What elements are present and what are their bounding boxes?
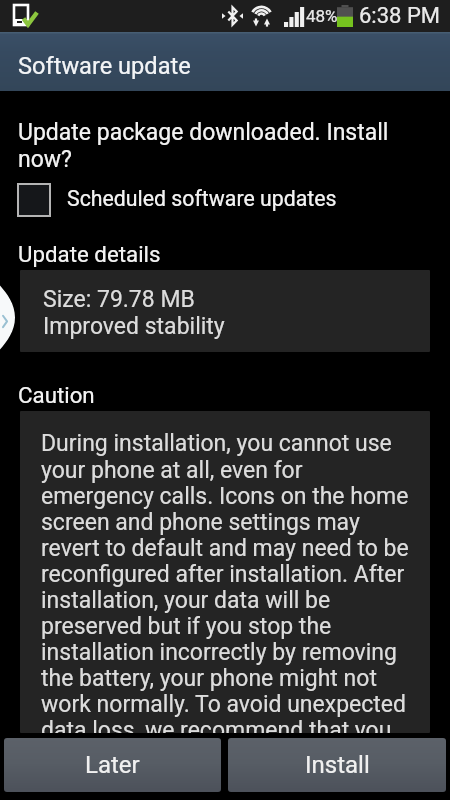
button[interactable]: Software update	[0, 32, 450, 91]
button[interactable]: Install	[228, 738, 446, 792]
staticText: Size: 79.78 MB	[43, 286, 195, 313]
staticText: Update package downloaded. Install now?	[18, 119, 428, 172]
button[interactable]: Open edge panel	[0, 282, 15, 353]
staticText: 6:38 PM	[359, 3, 440, 29]
staticText: Scheduled software updates	[67, 186, 337, 211]
button[interactable]: Scheduled software updates	[0, 175, 450, 223]
staticText: Update details	[18, 241, 161, 267]
staticText: During installation, you cannot use your…	[41, 430, 410, 733]
staticText: Later	[85, 751, 140, 779]
staticText: Install	[305, 751, 370, 779]
button[interactable]: Later	[4, 738, 221, 792]
staticText: Improved stability	[43, 313, 225, 340]
staticText: Software update	[18, 52, 191, 80]
staticText: 48%	[306, 6, 338, 26]
staticText: Caution	[18, 382, 95, 408]
